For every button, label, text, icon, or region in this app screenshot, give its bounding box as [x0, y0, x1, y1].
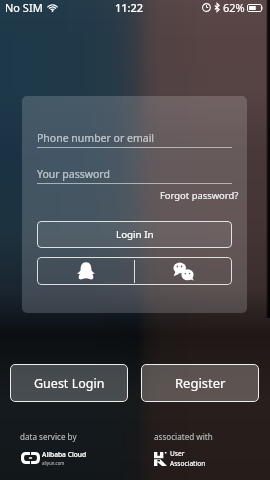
staticText: Your password — [37, 167, 110, 181]
staticText: associated with — [154, 431, 213, 442]
staticText: No SIM — [5, 0, 43, 15]
staticText: Guest Login — [34, 375, 105, 392]
staticText: Association — [170, 459, 206, 468]
staticText: Forgot password? — [160, 189, 239, 202]
staticText: Alibaba Cloud — [42, 450, 87, 459]
staticText: Login In — [116, 228, 154, 241]
button[interactable]: Alibaba Cloud — [21, 450, 87, 466]
button[interactable]: Register — [141, 364, 259, 402]
staticText: User — [170, 449, 185, 458]
button[interactable]: Login In — [37, 221, 232, 248]
staticText: data service by — [20, 431, 77, 442]
button[interactable]: Guest Login — [10, 364, 128, 402]
button[interactable]: Login with QQ — [37, 257, 134, 285]
staticText: 11:22 — [115, 0, 144, 15]
staticText: 62% — [223, 0, 245, 15]
staticText: aliyun.com — [42, 460, 65, 466]
button[interactable]: Forgot password? — [159, 188, 240, 203]
staticText: Phone number or email — [37, 131, 155, 145]
button[interactable]: User Association — [154, 449, 206, 468]
button[interactable]: Login with WeChat — [135, 257, 232, 285]
staticText: Register — [175, 374, 226, 392]
